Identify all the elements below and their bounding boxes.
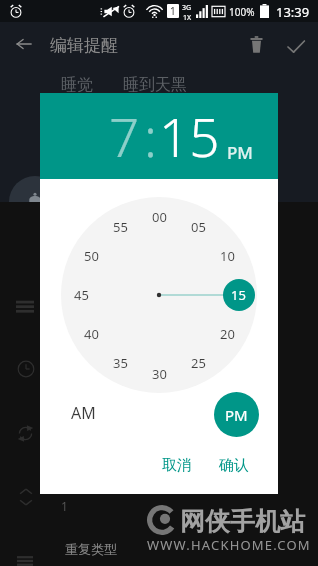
- staticText: 100%: [229, 5, 255, 19]
- staticText: 15: [231, 286, 246, 304]
- button[interactable]: 取消: [150, 450, 204, 480]
- staticText: 30: [152, 365, 167, 383]
- button[interactable]: 15: [154, 100, 224, 166]
- staticText: 3G: [182, 3, 192, 13]
- button[interactable]: 睡到天黑: [123, 75, 187, 95]
- button[interactable]: 睡觉: [61, 75, 93, 95]
- staticText: 取消: [162, 456, 192, 475]
- staticText: 确认: [219, 456, 249, 475]
- staticText: 1X: [183, 13, 192, 23]
- button[interactable]: Delete: [242, 30, 270, 58]
- staticText: WWW.HACKHOME.COM: [147, 536, 311, 554]
- staticText: 05: [191, 218, 206, 236]
- staticText: 1: [61, 498, 68, 514]
- button[interactable]: 编辑提醒: [50, 35, 118, 56]
- button[interactable]: Alarm: [9, 176, 61, 228]
- button[interactable]: Save: [282, 33, 310, 61]
- button[interactable]: Repeat: [17, 425, 34, 442]
- button[interactable]: 20: [213, 325, 241, 343]
- staticText: 1: [170, 4, 176, 18]
- button[interactable]: Back: [10, 30, 38, 58]
- staticText: 45: [74, 286, 89, 304]
- button[interactable]: Name: [16, 297, 34, 314]
- button[interactable]: 45: [67, 286, 95, 304]
- button[interactable]: 55: [106, 218, 134, 236]
- staticText: :: [144, 100, 157, 166]
- staticText: 重复类型: [65, 541, 117, 557]
- staticText: 20: [220, 325, 235, 343]
- staticText: 编辑提醒: [50, 35, 118, 56]
- staticText: 网侠手机站: [180, 506, 305, 537]
- staticText: 7: [109, 100, 140, 166]
- button[interactable]: 30: [145, 365, 173, 383]
- staticText: 睡到天黑: [123, 75, 187, 95]
- button[interactable]: 确认: [207, 450, 261, 480]
- staticText: 55: [113, 218, 128, 236]
- button[interactable]: 15: [224, 286, 252, 304]
- staticText: 13:39: [276, 3, 310, 21]
- button[interactable]: 25: [184, 354, 212, 372]
- staticText: 00: [152, 208, 167, 226]
- button[interactable]: 05: [184, 218, 212, 236]
- button[interactable]: Time: [17, 360, 35, 378]
- button[interactable]: 50: [77, 247, 105, 265]
- staticText: 15: [159, 100, 220, 166]
- staticText: 25: [191, 354, 206, 372]
- staticText: PM: [227, 141, 253, 159]
- staticText: 40: [84, 325, 99, 343]
- staticText: 睡觉: [61, 75, 93, 95]
- staticText: 35: [113, 354, 128, 372]
- staticText: 10: [220, 247, 235, 265]
- button[interactable]: 7: [108, 100, 140, 166]
- button[interactable]: 40: [77, 325, 105, 343]
- button[interactable]: 35: [106, 354, 134, 372]
- button[interactable]: Expand: [19, 488, 33, 506]
- button[interactable]: PM: [214, 392, 259, 437]
- button[interactable]: 10: [213, 247, 241, 265]
- button[interactable]: 00: [145, 208, 173, 226]
- button[interactable]: AM: [67, 401, 99, 425]
- staticText: PM: [225, 405, 248, 425]
- button[interactable]: PM: [225, 141, 255, 159]
- staticText: 50: [84, 247, 99, 265]
- staticText: AM: [71, 402, 96, 424]
